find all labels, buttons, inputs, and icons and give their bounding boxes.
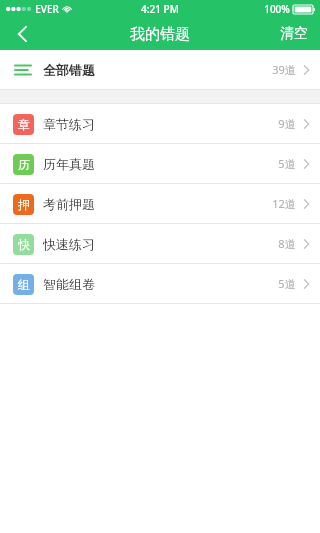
staticText: 章节练习 xyxy=(43,116,95,132)
staticText: 100% xyxy=(264,2,290,16)
staticText: 全部错题 xyxy=(43,62,95,78)
staticText: 快 xyxy=(18,237,30,252)
staticText: 考前押题 xyxy=(43,196,95,212)
staticText: 历 xyxy=(18,157,30,172)
button[interactable]: 全部错题 xyxy=(0,50,320,89)
staticText: 5道 xyxy=(278,156,296,171)
staticText: 历年真题 xyxy=(43,156,95,172)
staticText: 4:21 PM xyxy=(141,2,179,16)
staticText: 章 xyxy=(18,117,30,132)
staticText: 智能组卷 xyxy=(43,276,95,292)
staticText: 12道 xyxy=(272,196,296,211)
button[interactable]: 快 xyxy=(0,224,320,263)
button[interactable]: 组 xyxy=(0,264,320,303)
staticText: 我的错题 xyxy=(130,25,190,44)
staticText: EVER xyxy=(35,2,59,16)
staticText: 组 xyxy=(18,277,30,292)
button[interactable]: 押 xyxy=(0,184,320,223)
staticText: 8道 xyxy=(278,236,296,251)
staticText: 39道 xyxy=(272,62,296,77)
button[interactable]: 清空 xyxy=(268,18,320,50)
staticText: 押 xyxy=(18,197,30,212)
staticText: 快速练习 xyxy=(43,236,95,252)
button[interactable]: 章 xyxy=(0,104,320,143)
staticText: 9道 xyxy=(278,116,296,131)
button[interactable]: 历 xyxy=(0,144,320,183)
staticText: 5道 xyxy=(278,276,296,291)
staticText: 清空 xyxy=(280,25,308,43)
button[interactable]: Back xyxy=(0,18,44,50)
